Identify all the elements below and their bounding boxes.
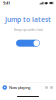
staticText: Keep up with chat bbox=[13, 27, 42, 32]
staticText: Now playing bbox=[9, 85, 30, 90]
staticText: 9:41 bbox=[3, 0, 10, 6]
button[interactable]: Now playing bbox=[0, 83, 56, 92]
button[interactable]: Auto-scroll toggle bbox=[16, 39, 40, 47]
staticText: Jump to latest bbox=[5, 15, 51, 24]
